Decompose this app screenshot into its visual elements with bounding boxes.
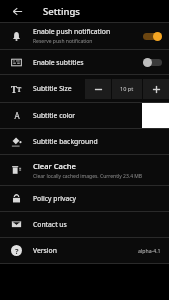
button[interactable]: Enable subtitles [0, 50, 169, 74]
staticText: Policy privacy [33, 194, 76, 203]
staticText: T [17, 85, 22, 94]
staticText: Subtitle background [33, 137, 98, 146]
button[interactable]: Clear Cache [0, 155, 169, 185]
button[interactable]: ? [0, 238, 169, 263]
button[interactable]: Back [9, 3, 26, 20]
staticText: Settings [43, 5, 80, 18]
staticText: Subtitle color [33, 111, 76, 120]
staticText: T [11, 83, 17, 94]
staticText: A [14, 110, 20, 121]
button[interactable]: Contact us [0, 212, 169, 237]
staticText: Clear Cache [33, 161, 76, 171]
button[interactable]: Adjust size [85, 79, 111, 99]
staticText: ? [15, 246, 19, 256]
staticText: Clear locally cached images. Currently 2… [33, 173, 143, 180]
staticText: Contact us [33, 220, 67, 229]
staticText: Reserve push notification [33, 38, 93, 45]
button[interactable]: A [0, 103, 169, 128]
staticText: 10 pt [120, 85, 134, 93]
button[interactable]: Subtitle background [0, 129, 169, 154]
staticText: Version [33, 246, 57, 255]
button[interactable]: Toggle off [143, 58, 162, 67]
staticText: Subtitle Size [33, 84, 72, 93]
button[interactable]: Toggle on [143, 32, 162, 41]
button[interactable]: Adjust size [143, 79, 169, 99]
staticText: Enable push notification [33, 27, 111, 36]
button[interactable]: Enable push notification [0, 23, 169, 49]
button[interactable]: Policy privacy [0, 186, 169, 211]
staticText: Enable subtitles [33, 58, 84, 67]
staticText: alpha-4.1 [138, 247, 161, 254]
